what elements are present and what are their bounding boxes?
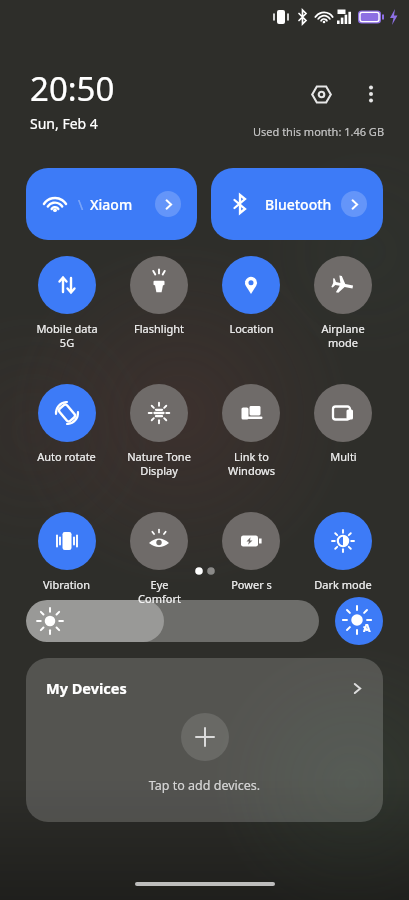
button[interactable]: Airplane mode <box>297 256 389 350</box>
button[interactable]: Settings <box>303 76 339 112</box>
staticText: 20:50 <box>30 66 115 111</box>
staticText: Power s <box>231 577 272 592</box>
button[interactable]: My Devices <box>26 658 383 822</box>
staticText: Nature Tone Display <box>127 449 191 478</box>
staticText: Auto rotate <box>37 449 96 464</box>
button[interactable]: Flashlight <box>113 256 205 336</box>
staticText: Xiaom <box>90 195 133 214</box>
staticText: Tap to add devices. <box>26 777 383 794</box>
button[interactable]: Bluetooth <box>227 168 367 240</box>
button[interactable]: More options <box>353 76 389 112</box>
button[interactable]: Eye Comfort <box>113 512 205 606</box>
staticText: Location <box>229 321 274 336</box>
button[interactable]: Dark mode <box>297 512 389 592</box>
staticText: Mobile data 5G <box>36 321 98 350</box>
button[interactable]: Nature Tone Display <box>113 384 205 478</box>
staticText: Link to Windows <box>228 449 275 478</box>
staticText: Vibration <box>43 577 90 592</box>
staticText: My Devices <box>46 678 127 698</box>
staticText: Dark mode <box>314 577 372 592</box>
staticText: A <box>363 620 371 635</box>
button[interactable]: \ <box>42 168 181 240</box>
button[interactable]: Add device <box>181 713 229 761</box>
staticText: Bluetooth <box>265 195 332 214</box>
staticText: Airplane mode <box>321 321 365 350</box>
button[interactable]: Link to Windows <box>205 384 297 478</box>
button[interactable]: Vibration <box>20 512 113 592</box>
staticText: Flashlight <box>134 321 184 336</box>
button[interactable]: Power s <box>205 512 297 592</box>
button[interactable]: Auto rotate <box>20 384 113 464</box>
button[interactable]: Multi <box>297 384 389 464</box>
button[interactable]: Open Xiaom settings <box>155 191 181 217</box>
button[interactable]: Location <box>205 256 297 336</box>
staticText: Used this month: 1.46 GB <box>253 124 385 139</box>
button[interactable]: Mobile data 5G <box>20 256 113 350</box>
button[interactable]: Auto brightness <box>335 597 383 645</box>
button[interactable]: Brightness <box>26 600 319 642</box>
staticText: Sun, Feb 4 <box>30 114 98 133</box>
staticText: Eye Comfort <box>138 577 181 606</box>
staticText: \ <box>78 195 84 214</box>
staticText: Multi <box>330 449 357 464</box>
button[interactable]: Open Bluetooth settings <box>341 191 367 217</box>
